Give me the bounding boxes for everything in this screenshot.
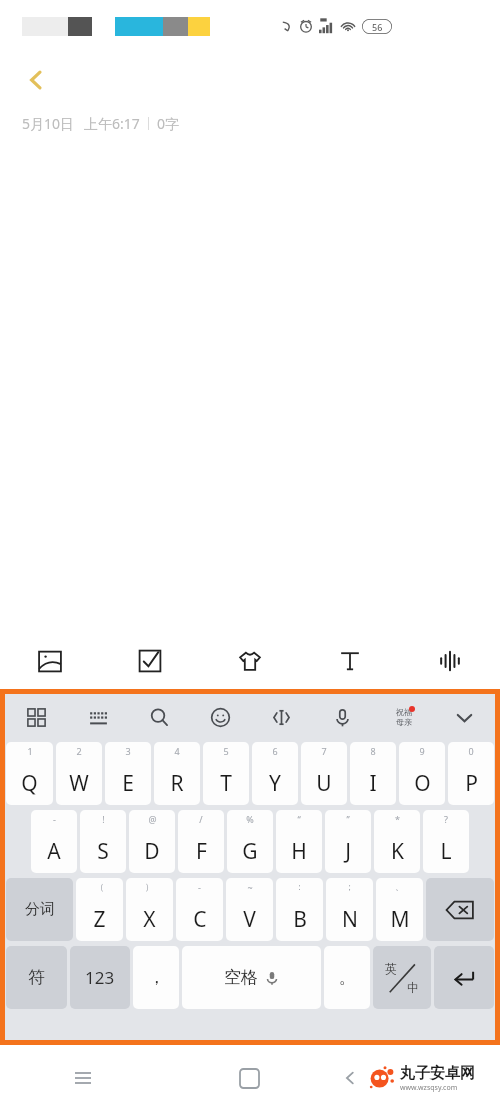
button[interactable]: Hide keyboard	[434, 694, 495, 740]
staticText: Y	[269, 769, 281, 798]
button[interactable]: 7	[301, 742, 347, 805]
staticText: ：	[295, 881, 304, 892]
staticText: W	[69, 769, 89, 798]
staticText: Q	[21, 769, 38, 798]
button[interactable]: 5	[203, 742, 249, 805]
staticText: 母亲	[396, 717, 412, 727]
button[interactable]: 4	[154, 742, 200, 805]
staticText: ~	[247, 881, 253, 893]
button[interactable]: Image	[0, 633, 100, 689]
staticText: 空格	[224, 967, 258, 988]
staticText: 分词	[25, 900, 55, 919]
button[interactable]: ：	[276, 878, 323, 941]
staticText: 祝福	[396, 707, 412, 717]
button[interactable]: 、	[376, 878, 423, 941]
staticText: X	[143, 905, 156, 934]
button[interactable]: 。	[324, 946, 370, 1009]
button[interactable]: （	[76, 878, 123, 941]
button[interactable]: Checklist	[100, 633, 200, 689]
button[interactable]: 123	[70, 946, 130, 1009]
button[interactable]: Greeting	[373, 694, 434, 740]
staticText: @	[148, 813, 157, 825]
button[interactable]: Audio	[400, 633, 500, 689]
button[interactable]: Cursor	[251, 694, 312, 740]
button[interactable]: “	[276, 810, 322, 873]
button[interactable]: 符	[6, 946, 67, 1009]
staticText: *	[395, 813, 400, 825]
staticText: 56	[372, 21, 383, 33]
staticText: “	[297, 813, 301, 825]
button[interactable]: 0	[448, 742, 494, 805]
staticText: J	[345, 837, 351, 866]
staticText: 上午6:17	[84, 114, 140, 133]
staticText: 9	[419, 745, 425, 757]
button[interactable]: %	[227, 810, 273, 873]
staticText: 4	[174, 745, 180, 757]
button[interactable]: ，	[133, 946, 179, 1009]
button[interactable]: Back	[333, 1061, 367, 1095]
button[interactable]: Voice input	[312, 694, 373, 740]
button[interactable]: !	[80, 810, 126, 873]
button[interactable]: -	[176, 878, 223, 941]
button[interactable]: ；	[326, 878, 373, 941]
button[interactable]: 分词	[6, 878, 73, 941]
staticText: P	[465, 769, 478, 798]
button[interactable]: Text format	[300, 633, 400, 689]
staticText: 8	[370, 745, 376, 757]
staticText: 符	[28, 967, 45, 988]
button[interactable]: ）	[126, 878, 173, 941]
button[interactable]: 6	[252, 742, 298, 805]
button[interactable]: Backspace	[426, 878, 494, 941]
staticText: 0字	[157, 114, 180, 133]
button[interactable]: -	[31, 810, 77, 873]
staticText: ?	[444, 813, 448, 825]
staticText: 123	[85, 966, 115, 989]
button[interactable]: Home	[166, 1045, 333, 1111]
staticText: 丸子安卓网	[400, 1064, 475, 1083]
staticText: 1	[27, 745, 33, 757]
staticText: !	[102, 813, 105, 825]
button[interactable]: Search	[129, 694, 190, 740]
button[interactable]: ~	[226, 878, 273, 941]
button[interactable]: 8	[350, 742, 396, 805]
button[interactable]: English Chinese toggle	[373, 946, 431, 1009]
button[interactable]: Emoji	[190, 694, 251, 740]
button[interactable]: 2	[56, 742, 102, 805]
staticText: F	[196, 837, 207, 866]
staticText: H	[291, 837, 307, 866]
staticText: T	[220, 769, 232, 798]
button[interactable]: 9	[399, 742, 445, 805]
button[interactable]: @	[129, 810, 175, 873]
staticText: 7	[321, 745, 327, 757]
button[interactable]: Recents	[0, 1045, 166, 1111]
staticText: 中	[407, 980, 419, 995]
button[interactable]: ”	[325, 810, 371, 873]
button[interactable]: 1	[6, 742, 53, 805]
button[interactable]: Enter	[434, 946, 494, 1009]
button[interactable]: 3	[105, 742, 151, 805]
staticText: ）	[145, 881, 154, 892]
staticText: Z	[93, 905, 106, 934]
staticText: G	[242, 837, 258, 866]
staticText: ”	[346, 813, 350, 825]
staticText: 5月10日	[22, 114, 75, 133]
button[interactable]: *	[374, 810, 420, 873]
button[interactable]: /	[178, 810, 224, 873]
staticText: L	[440, 837, 452, 866]
staticText: M	[390, 905, 410, 934]
button[interactable]: Keyboard layout	[67, 694, 129, 740]
staticText: 2	[76, 745, 82, 757]
staticText: R	[170, 769, 184, 798]
button[interactable]: 空格	[182, 946, 321, 1009]
button[interactable]: ?	[423, 810, 469, 873]
staticText: 、	[395, 881, 404, 892]
staticText: -	[198, 881, 201, 893]
button[interactable]: Panels	[5, 694, 67, 740]
staticText: -	[53, 813, 56, 825]
staticText: 英	[385, 961, 397, 976]
staticText: U	[316, 769, 332, 798]
button[interactable]: Style	[200, 633, 300, 689]
button[interactable]: Back	[12, 56, 60, 104]
staticText: A	[47, 837, 61, 866]
staticText: 3	[125, 745, 131, 757]
